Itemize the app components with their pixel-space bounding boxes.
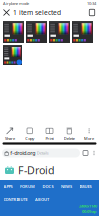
staticText: F-Droid — [18, 163, 55, 177]
button[interactable]: FORUM — [17, 180, 37, 193]
staticText: Print — [45, 136, 53, 141]
button[interactable]: NEWS — [58, 180, 74, 193]
staticText: Share — [5, 136, 15, 141]
staticText: NEWS — [61, 184, 72, 189]
staticText: DOCS — [42, 184, 53, 189]
button[interactable]: Tabs — [81, 147, 90, 158]
staticText: 00:09:ap — [82, 209, 97, 214]
staticText: Details — [37, 150, 49, 156]
button[interactable]: APPS — [1, 180, 15, 193]
staticText: Delete — [64, 136, 75, 141]
button[interactable]: Print — [40, 127, 59, 141]
button[interactable]: DOCS — [40, 180, 56, 193]
staticText: CONTRIBUTE — [3, 197, 27, 202]
button[interactable]: Copy — [20, 127, 40, 141]
staticText: ABOUT — [35, 197, 49, 202]
button[interactable]: Select all — [85, 7, 99, 18]
button[interactable]: More — [79, 127, 99, 141]
staticText: APPS — [3, 184, 12, 189]
button[interactable]: Close — [0, 7, 13, 18]
staticText: 10:34 — [87, 1, 96, 6]
staticText: 1 item selected — [13, 8, 61, 17]
button[interactable]: ABOUT — [32, 193, 51, 206]
staticText: Airplane mode — [3, 1, 29, 6]
button[interactable]: Menu — [91, 147, 97, 158]
button[interactable]: ISSUES — [77, 180, 94, 193]
button[interactable]: CONTRIBUTE — [1, 193, 30, 206]
staticText: ISSUES — [79, 184, 91, 189]
staticText: 2480x1140 — [79, 203, 97, 209]
button[interactable]: Delete — [59, 127, 79, 141]
staticText: More — [84, 136, 94, 141]
button[interactable]: Share — [0, 127, 20, 141]
staticText: Copy — [25, 136, 34, 141]
staticText: FORUM — [20, 184, 35, 189]
staticText: f-droid.org — [10, 149, 35, 157]
